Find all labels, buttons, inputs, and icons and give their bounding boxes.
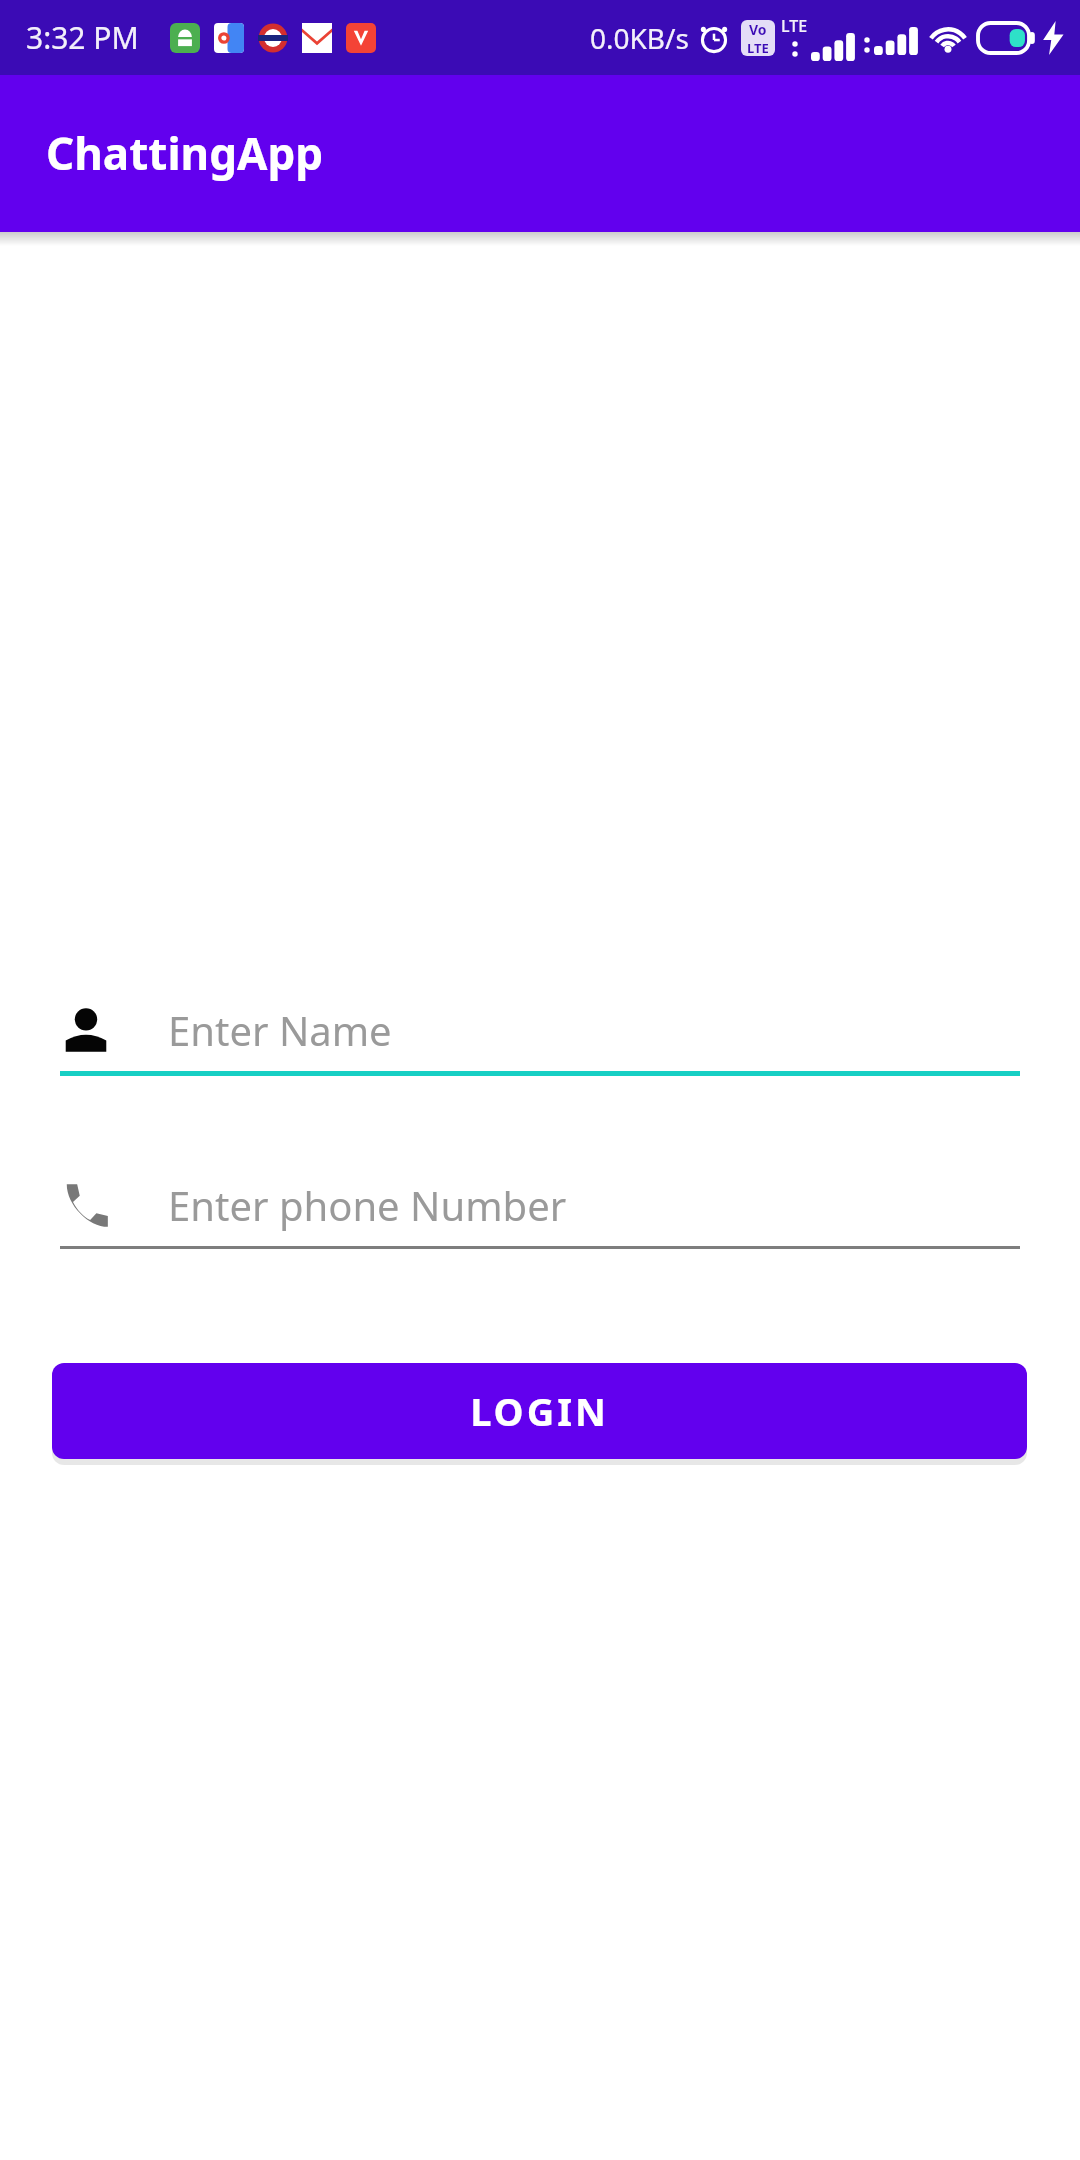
staticText: 0.0KB/s: [590, 19, 689, 57]
button[interactable]: Phone number: [60, 1168, 1020, 1242]
staticText: LOGIN: [470, 1385, 609, 1437]
staticText: LTE: [781, 15, 808, 37]
staticText: LTE: [747, 39, 769, 56]
staticText: Vo: [749, 20, 767, 39]
other: Phone number: [60, 1179, 112, 1231]
staticText: Enter Name: [168, 1003, 392, 1057]
other: Name: [60, 1004, 112, 1056]
button[interactable]: LOGIN: [52, 1363, 1027, 1459]
staticText: Enter phone Number: [168, 1178, 567, 1232]
staticText: ChattingApp: [46, 123, 324, 183]
button[interactable]: Name: [60, 993, 1020, 1067]
staticText: 3:32 PM: [26, 17, 139, 58]
